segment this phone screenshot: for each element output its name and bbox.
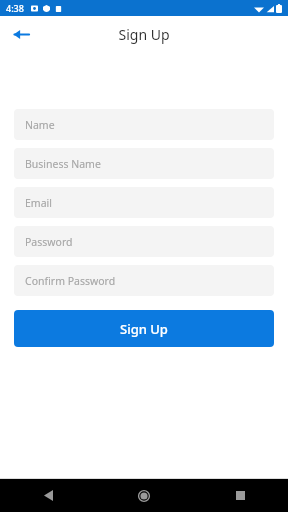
staticText: Business Name xyxy=(25,157,101,171)
button[interactable]: Sign Up xyxy=(14,310,274,347)
button[interactable]: Business Name xyxy=(14,148,274,179)
button[interactable]: Confirm Password xyxy=(14,265,274,296)
button[interactable]: Home xyxy=(96,479,192,512)
button[interactable]: Name xyxy=(14,109,274,140)
staticText: Sign Up xyxy=(118,25,170,44)
staticText: Password xyxy=(25,235,73,249)
staticText: 4:38 xyxy=(6,2,24,14)
staticText: Confirm Password xyxy=(25,274,116,288)
button[interactable]: Back xyxy=(0,479,96,512)
staticText: Sign Up xyxy=(120,320,168,338)
button[interactable]: Password xyxy=(14,226,274,257)
button[interactable]: Email xyxy=(14,187,274,218)
staticText: Name xyxy=(25,118,55,132)
staticText: Email xyxy=(25,196,52,210)
button[interactable]: Recent apps xyxy=(192,479,288,512)
button[interactable]: Back xyxy=(7,20,35,48)
